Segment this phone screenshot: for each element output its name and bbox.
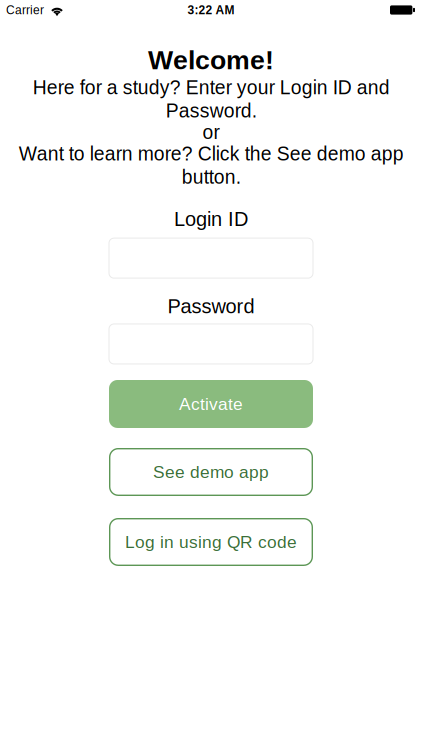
- staticText: Want to learn more? Click the See demo a…: [18, 143, 403, 188]
- staticText: Carrier: [6, 3, 44, 17]
- staticText: Password: [167, 295, 254, 317]
- staticText: 3:22 AM: [187, 3, 234, 17]
- staticText: Activate: [179, 394, 243, 414]
- staticText: Log in using QR code: [125, 532, 297, 552]
- staticText: Login ID: [174, 208, 248, 230]
- staticText: See demo app: [153, 462, 269, 482]
- staticText: Here for a study? Enter your Login ID an…: [32, 77, 389, 121]
- button[interactable]: Log in using QR code: [109, 518, 313, 566]
- staticText: Welcome!: [148, 45, 274, 75]
- button[interactable]: Activate: [109, 380, 313, 428]
- button[interactable]: See demo app: [109, 448, 313, 496]
- staticText: or: [202, 121, 219, 143]
